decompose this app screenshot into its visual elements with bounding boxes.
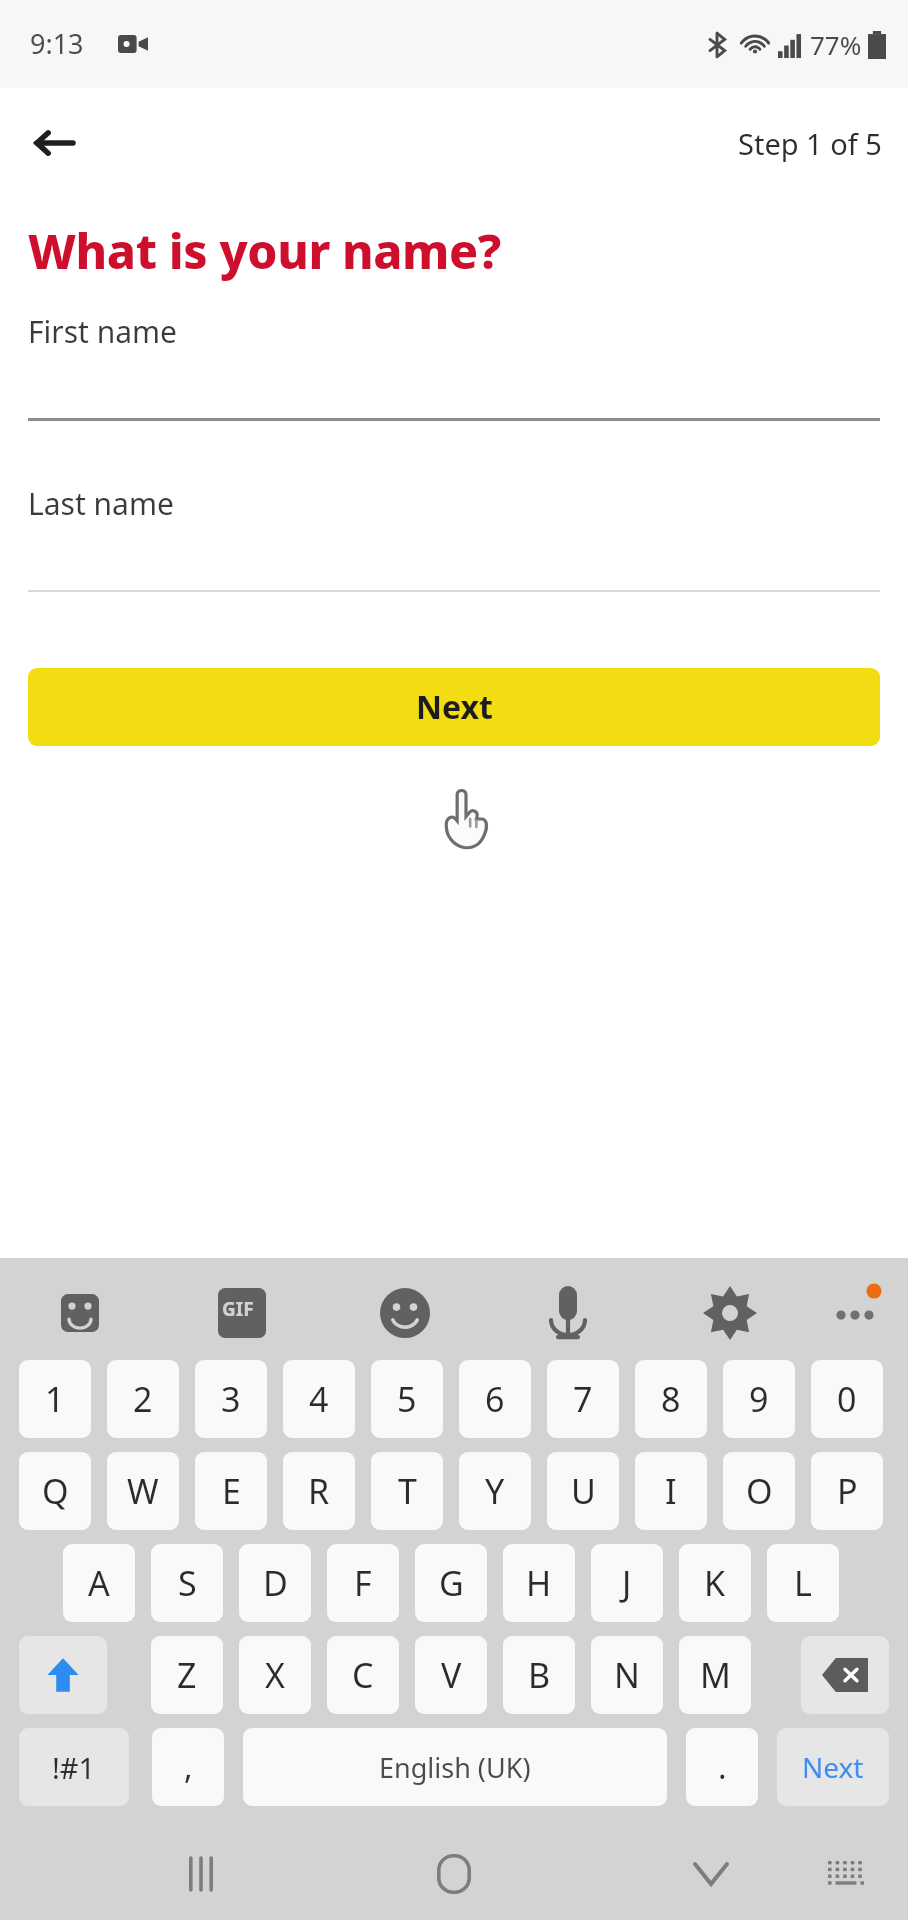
button[interactable]: 3 bbox=[195, 1360, 267, 1438]
button[interactable]: Z bbox=[151, 1636, 223, 1714]
staticText: O bbox=[746, 1468, 773, 1514]
staticText: V bbox=[441, 1652, 462, 1698]
staticText: Next bbox=[802, 1748, 864, 1786]
button[interactable]: . bbox=[686, 1728, 758, 1806]
button[interactable]: 9 bbox=[723, 1360, 795, 1438]
staticText: , bbox=[184, 1745, 193, 1789]
staticText: Q bbox=[42, 1468, 69, 1514]
button[interactable]: , bbox=[152, 1728, 224, 1806]
button[interactable]: J bbox=[591, 1544, 663, 1622]
staticText: T bbox=[398, 1468, 417, 1514]
button[interactable]: 1 bbox=[19, 1360, 91, 1438]
staticText: !#1 bbox=[52, 1748, 96, 1787]
button[interactable]: Recent apps bbox=[168, 1841, 234, 1907]
staticText: L bbox=[794, 1560, 812, 1606]
staticText: B bbox=[528, 1652, 551, 1698]
button[interactable]: G bbox=[415, 1544, 487, 1622]
staticText: U bbox=[571, 1468, 596, 1514]
button[interactable]: Q bbox=[19, 1452, 91, 1530]
staticText: Next bbox=[416, 685, 493, 729]
button[interactable]: L bbox=[767, 1544, 839, 1622]
button[interactable]: 0 bbox=[811, 1360, 883, 1438]
button[interactable]: H bbox=[503, 1544, 575, 1622]
button[interactable]: 8 bbox=[635, 1360, 707, 1438]
staticText: G bbox=[439, 1560, 464, 1606]
button[interactable]: K bbox=[679, 1544, 751, 1622]
button[interactable]: R bbox=[283, 1452, 355, 1530]
button[interactable]: T bbox=[371, 1452, 443, 1530]
staticText: H bbox=[526, 1560, 552, 1606]
staticText: 3 bbox=[221, 1376, 241, 1422]
staticText: S bbox=[178, 1560, 197, 1606]
button[interactable]: English (UK) bbox=[243, 1728, 667, 1806]
button[interactable]: A bbox=[63, 1544, 135, 1622]
staticText: . bbox=[718, 1745, 727, 1789]
button[interactable]: E bbox=[195, 1452, 267, 1530]
staticText: 9:13 bbox=[30, 25, 84, 62]
button[interactable]: P bbox=[811, 1452, 883, 1530]
button[interactable]: O bbox=[723, 1452, 795, 1530]
staticText: R bbox=[308, 1468, 330, 1514]
staticText: 9 bbox=[749, 1376, 769, 1422]
staticText: M bbox=[700, 1652, 731, 1698]
button[interactable]: Hide keyboard bbox=[678, 1841, 744, 1907]
staticText: J bbox=[622, 1560, 632, 1606]
button[interactable]: W bbox=[107, 1452, 179, 1530]
button[interactable]: Shift bbox=[19, 1636, 107, 1714]
button[interactable]: D bbox=[239, 1544, 311, 1622]
button[interactable]: X bbox=[239, 1636, 311, 1714]
button[interactable]: 6 bbox=[459, 1360, 531, 1438]
button[interactable]: S bbox=[151, 1544, 223, 1622]
button[interactable]: Y bbox=[459, 1452, 531, 1530]
staticText: 77% bbox=[810, 27, 862, 62]
button[interactable]: Next bbox=[28, 668, 880, 746]
button[interactable]: N bbox=[591, 1636, 663, 1714]
staticText: 4 bbox=[309, 1376, 329, 1422]
staticText: 8 bbox=[661, 1376, 681, 1422]
button[interactable]: Step 1 of 5 bbox=[738, 124, 882, 163]
button[interactable]: Backspace bbox=[801, 1636, 889, 1714]
button[interactable]: 5 bbox=[371, 1360, 443, 1438]
staticText: C bbox=[352, 1652, 374, 1698]
staticText: 6 bbox=[485, 1376, 505, 1422]
staticText: P bbox=[837, 1468, 858, 1514]
button[interactable]: !#1 bbox=[19, 1728, 129, 1806]
button[interactable]: M bbox=[679, 1636, 751, 1714]
staticText: F bbox=[354, 1560, 372, 1606]
staticText: W bbox=[127, 1468, 159, 1514]
staticText: 5 bbox=[397, 1376, 417, 1422]
button[interactable]: C bbox=[327, 1636, 399, 1714]
button[interactable]: 4 bbox=[283, 1360, 355, 1438]
staticText: GIF bbox=[222, 1296, 254, 1322]
staticText: What is your name? bbox=[28, 218, 501, 283]
button[interactable]: V bbox=[415, 1636, 487, 1714]
button[interactable]: 2 bbox=[107, 1360, 179, 1438]
staticText: A bbox=[88, 1560, 110, 1606]
button[interactable]: 7 bbox=[547, 1360, 619, 1438]
button[interactable]: U bbox=[547, 1452, 619, 1530]
button[interactable]: B bbox=[503, 1636, 575, 1714]
button[interactable]: Back bbox=[26, 114, 84, 172]
staticText: 0 bbox=[837, 1376, 857, 1422]
staticText: First name bbox=[28, 311, 178, 352]
staticText: X bbox=[265, 1652, 285, 1698]
staticText: Y bbox=[485, 1468, 505, 1514]
staticText: Last name bbox=[28, 483, 174, 524]
button[interactable]: Next bbox=[777, 1728, 889, 1806]
button[interactable]: F bbox=[327, 1544, 399, 1622]
button[interactable]: Change keyboard bbox=[813, 1841, 879, 1907]
staticText: 1 bbox=[45, 1376, 65, 1422]
staticText: E bbox=[222, 1468, 241, 1514]
staticText: 7 bbox=[573, 1376, 593, 1422]
button[interactable]: Home bbox=[419, 1839, 489, 1909]
button[interactable]: I bbox=[635, 1452, 707, 1530]
staticText: I bbox=[665, 1468, 677, 1514]
staticText: N bbox=[614, 1652, 640, 1698]
staticText: English (UK) bbox=[379, 1749, 531, 1786]
staticText: D bbox=[263, 1560, 288, 1606]
staticText: K bbox=[704, 1560, 726, 1606]
staticText: Z bbox=[177, 1652, 197, 1698]
staticText: 2 bbox=[133, 1376, 153, 1422]
